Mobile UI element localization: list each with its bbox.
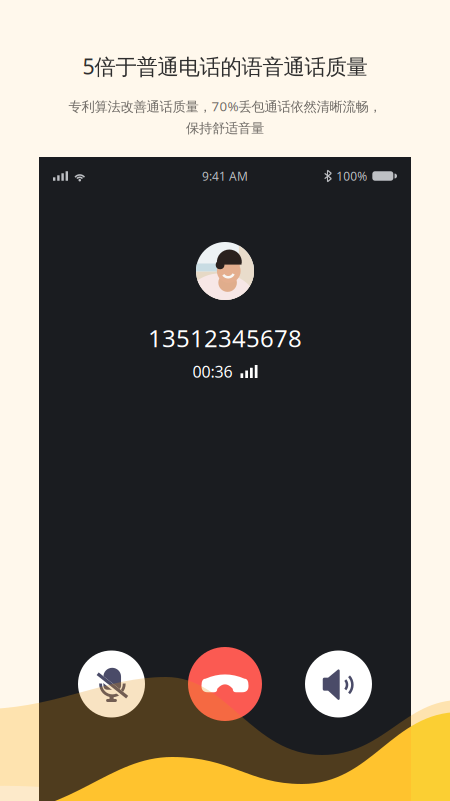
- button[interactable]: Speaker: [305, 650, 372, 717]
- button[interactable]: End call: [188, 647, 262, 721]
- button[interactable]: Mute: [78, 650, 145, 717]
- staticText: 13512345678: [148, 322, 302, 354]
- staticText: 100%: [336, 168, 367, 184]
- staticText: 9:41 AM: [202, 168, 248, 184]
- staticText: 00:36: [192, 361, 232, 382]
- staticText: 保持舒适音量: [186, 120, 264, 136]
- staticText: 专利算法改善通话质量，70%丢包通话依然清晰流畅，: [68, 97, 381, 115]
- staticText: 5倍于普通电话的语音通话质量: [82, 52, 367, 80]
